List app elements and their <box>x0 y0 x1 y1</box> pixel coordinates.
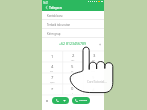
button[interactable]: Kirim grup <box>42 29 104 37</box>
staticText: ABC <box>71 59 75 61</box>
button[interactable]: * <box>42 84 62 95</box>
staticText: 3 <box>93 53 96 59</box>
button[interactable]: 1 <box>42 51 62 62</box>
button[interactable]: 6 <box>83 62 104 73</box>
staticText: CareTutorial... <box>87 80 107 84</box>
staticText: 0 <box>71 86 74 92</box>
staticText: 8 <box>72 75 75 81</box>
button[interactable]: 3 <box>83 51 104 62</box>
staticText: Panggil <box>79 99 88 102</box>
button[interactable]: Terbaik tak urutan <box>42 20 104 28</box>
staticText: 7 <box>51 75 54 81</box>
staticText: 9:41 <box>43 1 49 5</box>
staticText: 5 <box>71 64 74 70</box>
staticText: DEF <box>92 59 96 61</box>
button[interactable]: 2 <box>62 51 83 62</box>
button[interactable]: Kontak baru <box>42 11 104 19</box>
staticText: +62 8123456789 <box>59 41 86 46</box>
staticText: Kirim grup <box>47 32 61 36</box>
button[interactable]: Panggil <box>72 97 90 104</box>
staticText: Terbaik tak urutan <box>47 23 71 27</box>
button[interactable]: 7 <box>42 73 62 84</box>
staticText: Telepon <box>49 5 62 10</box>
staticText: GHI <box>50 70 54 72</box>
button[interactable]: # <box>83 84 104 95</box>
button[interactable]: 9 <box>83 73 104 84</box>
staticText: Kontak baru <box>47 14 63 18</box>
staticText: TUV <box>71 81 75 83</box>
staticText: JKL <box>71 70 74 72</box>
staticText: 1 <box>51 54 54 60</box>
button[interactable]: Call with WiFi <box>52 97 69 104</box>
staticText: * <box>51 87 54 93</box>
button[interactable]: 8 <box>62 73 83 84</box>
button[interactable]: 0 <box>62 84 83 95</box>
staticText: # <box>92 87 95 93</box>
staticText: PQRS <box>50 81 55 83</box>
staticText: 9 <box>92 75 95 81</box>
staticText: 4 <box>51 64 54 70</box>
button[interactable]: Back <box>44 5 49 10</box>
staticText: 2 <box>72 53 75 59</box>
button[interactable]: 4 <box>42 62 62 73</box>
button[interactable]: Backspace <box>97 42 101 46</box>
button[interactable]: 5 <box>62 62 83 73</box>
staticText: + <box>72 92 73 94</box>
staticText: WXYZ <box>91 81 96 83</box>
